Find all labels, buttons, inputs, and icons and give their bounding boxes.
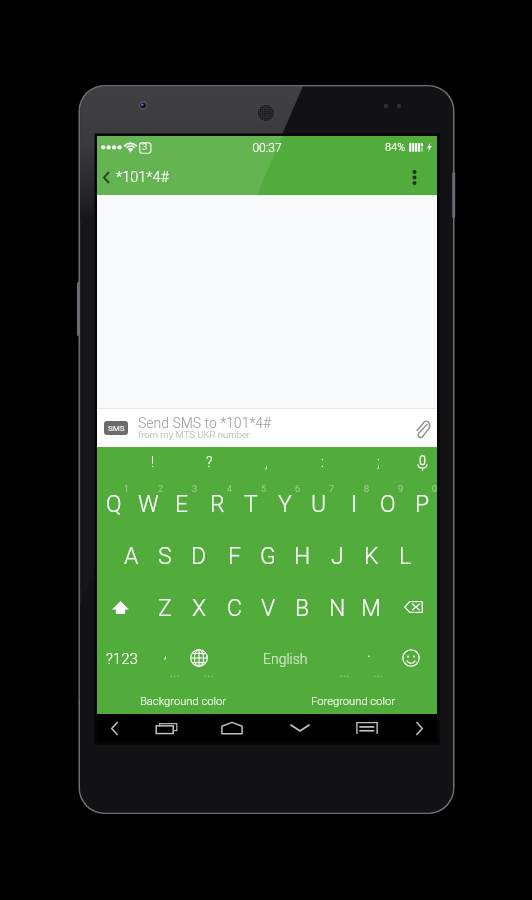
- staticText: M: [361, 595, 381, 622]
- staticText: W: [138, 491, 159, 518]
- staticText: .: [367, 643, 371, 661]
- button[interactable]: H: [285, 535, 319, 577]
- staticText: Z: [158, 595, 172, 622]
- staticText: N: [329, 595, 346, 622]
- staticText: English: [263, 651, 308, 667]
- button[interactable]: Recent apps: [146, 714, 186, 742]
- button[interactable]: K: [354, 535, 388, 577]
- button[interactable]: S: [148, 535, 182, 577]
- staticText: V: [261, 595, 276, 622]
- staticText: P: [415, 491, 430, 518]
- staticText: D: [191, 543, 207, 570]
- staticText: SMS: [108, 424, 125, 433]
- button[interactable]: X: [182, 587, 216, 629]
- button[interactable]: Z: [148, 587, 182, 629]
- button[interactable]: D: [182, 535, 216, 577]
- button[interactable]: ,: [246, 449, 286, 475]
- staticText: 7: [329, 484, 334, 495]
- staticText: Send SMS to *101*4#: [138, 415, 272, 431]
- button[interactable]: Emoji: [395, 637, 427, 679]
- staticText: C: [227, 595, 242, 622]
- button[interactable]: Backspace: [393, 586, 433, 628]
- staticText: O: [380, 491, 396, 518]
- staticText: H: [294, 543, 311, 570]
- staticText: ,: [265, 454, 268, 470]
- staticText: J: [331, 543, 344, 570]
- other: Navigate back: [99, 159, 113, 195]
- staticText: Foreground color: [311, 695, 395, 708]
- button[interactable]: .: [356, 636, 382, 678]
- button[interactable]: English: [218, 638, 350, 680]
- staticText: Background color: [140, 695, 226, 708]
- button[interactable]: Attach file: [409, 409, 435, 447]
- button[interactable]: SMS: [97, 409, 437, 447]
- staticText: L: [399, 543, 412, 570]
- button[interactable]: N: [320, 587, 354, 629]
- button[interactable]: M: [354, 587, 388, 629]
- staticText: T: [244, 491, 258, 518]
- button[interactable]: U: [302, 483, 336, 525]
- staticText: U: [311, 491, 327, 518]
- staticText: :: [321, 454, 324, 470]
- button[interactable]: J: [320, 535, 354, 577]
- staticText: 5: [261, 484, 266, 495]
- staticText: F: [228, 543, 241, 570]
- button[interactable]: V: [251, 587, 285, 629]
- staticText: 2: [158, 484, 163, 495]
- button[interactable]: T: [234, 483, 268, 525]
- button[interactable]: More options: [402, 159, 426, 195]
- staticText: 0: [432, 484, 437, 495]
- button[interactable]: Next: [399, 714, 439, 742]
- staticText: A: [124, 543, 139, 570]
- staticText: B: [295, 595, 310, 622]
- button[interactable]: ;: [358, 449, 398, 475]
- staticText: Q: [106, 491, 122, 518]
- button[interactable]: R: [200, 483, 234, 525]
- button[interactable]: Navigate back: [99, 159, 179, 195]
- button[interactable]: Home: [212, 714, 252, 742]
- staticText: 84%: [385, 141, 406, 154]
- staticText: 4: [227, 484, 232, 495]
- button[interactable]: P: [405, 483, 439, 525]
- button[interactable]: C: [217, 587, 251, 629]
- staticText: 00:37: [252, 141, 282, 155]
- button[interactable]: G: [251, 535, 285, 577]
- staticText: K: [364, 543, 379, 570]
- staticText: 3: [192, 484, 197, 495]
- button[interactable]: Hide keyboard: [280, 714, 320, 742]
- staticText: !: [151, 454, 155, 470]
- staticText: S: [158, 543, 172, 570]
- button[interactable]: L: [388, 535, 422, 577]
- button[interactable]: E: [165, 483, 199, 525]
- staticText: 8: [364, 484, 369, 495]
- staticText: 6: [295, 484, 300, 495]
- button[interactable]: B: [285, 587, 319, 629]
- staticText: Y: [278, 491, 292, 518]
- button[interactable]: ,: [152, 636, 178, 678]
- button[interactable]: I: [337, 483, 371, 525]
- staticText: ?: [206, 454, 213, 470]
- button[interactable]: Change keyboard language: [184, 637, 214, 679]
- button[interactable]: :: [302, 449, 342, 475]
- button[interactable]: !: [133, 449, 173, 475]
- button[interactable]: W: [131, 483, 165, 525]
- staticText: ?123: [106, 650, 138, 668]
- staticText: *101*4#: [116, 169, 169, 186]
- staticText: ;: [377, 454, 380, 470]
- button[interactable]: O: [371, 483, 405, 525]
- button[interactable]: F: [217, 535, 251, 577]
- staticText: G: [260, 543, 276, 570]
- button[interactable]: A: [114, 535, 148, 577]
- staticText: ,: [164, 643, 167, 661]
- button[interactable]: Q: [97, 483, 131, 525]
- staticText: 9: [398, 484, 403, 495]
- button[interactable]: Shift: [100, 586, 140, 628]
- button[interactable]: ?123: [100, 638, 144, 680]
- button[interactable]: Switch keyboard: [347, 714, 387, 742]
- staticText: X: [192, 595, 207, 622]
- button[interactable]: Previous: [94, 714, 134, 742]
- button[interactable]: ?: [189, 449, 229, 475]
- button[interactable]: Y: [268, 483, 302, 525]
- staticText: E: [175, 491, 189, 518]
- button[interactable]: Voice input: [405, 450, 439, 476]
